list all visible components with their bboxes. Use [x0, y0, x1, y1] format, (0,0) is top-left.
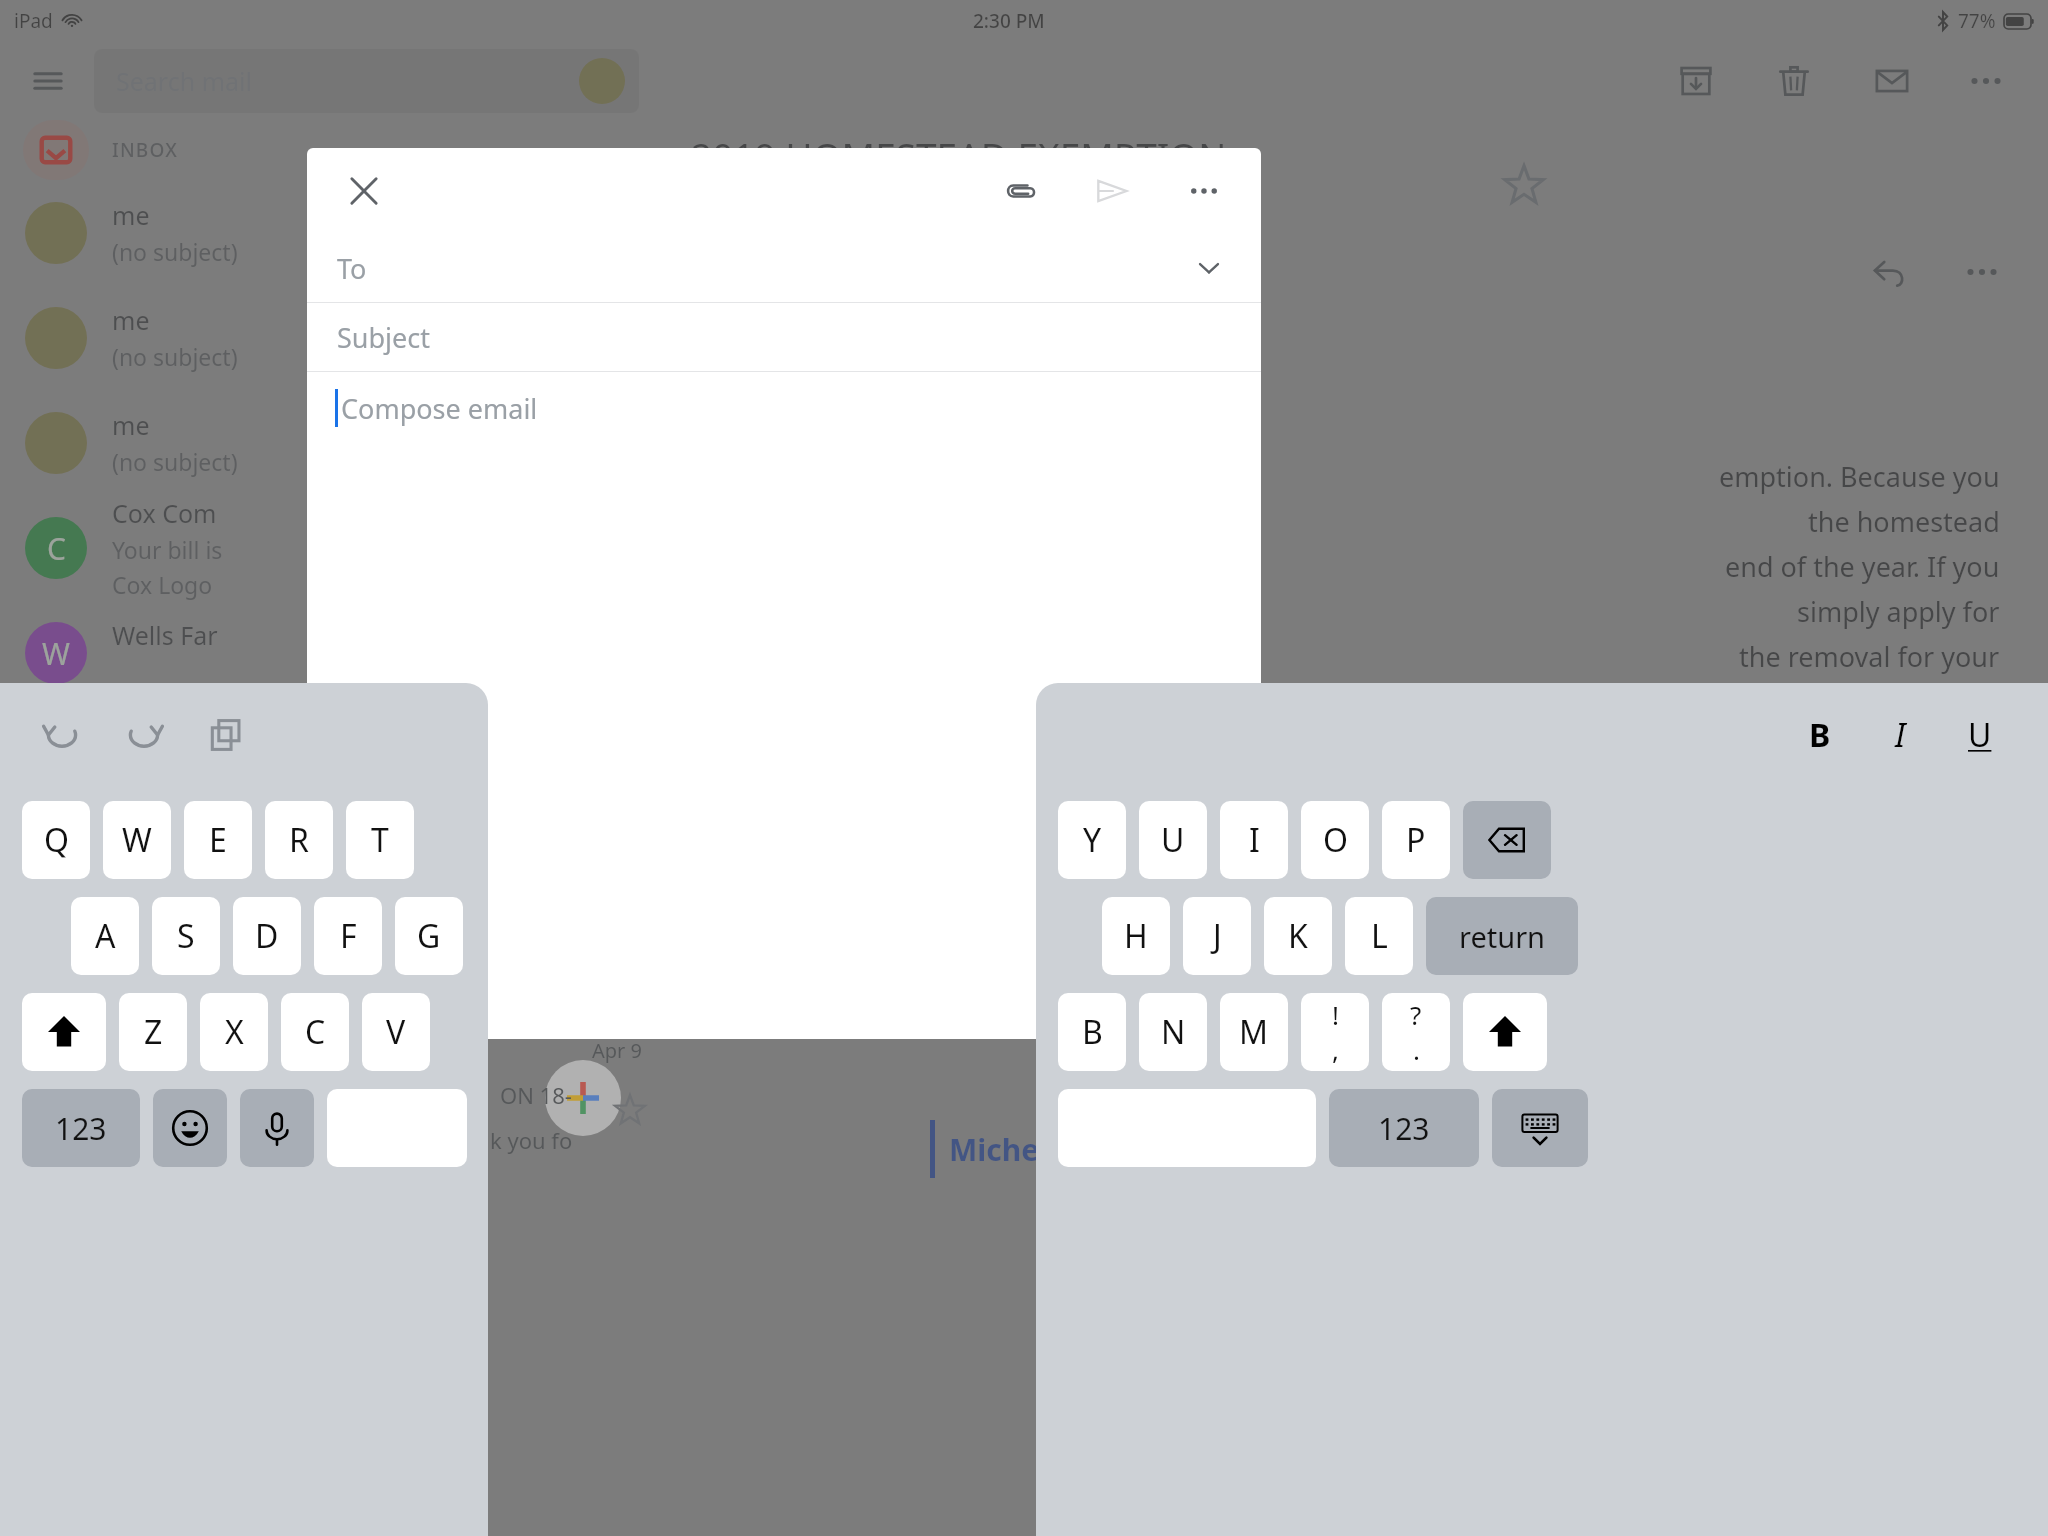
button[interactable]: Dictate [240, 1089, 314, 1167]
button[interactable]: Delete [1768, 55, 1820, 107]
button[interactable]: Reply [1864, 246, 1916, 298]
button[interactable]: U [1952, 707, 2008, 763]
staticText: INBOX [112, 137, 179, 163]
staticText: Miche [949, 1129, 1040, 1170]
button[interactable]: me [0, 285, 663, 390]
button[interactable]: Subject [307, 303, 1261, 371]
button[interactable]: ! [1301, 993, 1369, 1071]
button[interactable]: S [152, 897, 220, 975]
button[interactable]: Close [337, 164, 391, 218]
staticText: (no subject) [112, 341, 238, 372]
staticText: ! [1332, 997, 1339, 1032]
button[interactable]: L [1345, 897, 1413, 975]
button[interactable]: I [1872, 707, 1928, 763]
staticText: To [337, 250, 367, 287]
button[interactable]: B [1792, 707, 1848, 763]
staticText: emption. Because you [1719, 458, 2000, 495]
button[interactable]: Send [1085, 164, 1139, 218]
staticText: M [1239, 1010, 1269, 1054]
button[interactable]: V [362, 993, 430, 1071]
staticText: C [305, 1010, 326, 1054]
button[interactable]: Attach file [993, 164, 1047, 218]
button[interactable]: B [1058, 993, 1126, 1071]
button[interactable]: U [1139, 801, 1207, 879]
button[interactable]: T [346, 801, 414, 879]
button[interactable]: Compose email [307, 372, 1261, 444]
button[interactable]: C [281, 993, 349, 1071]
button[interactable]: G [395, 897, 463, 975]
staticText: B [1082, 1010, 1103, 1054]
button[interactable]: Space [1058, 1089, 1316, 1167]
button[interactable]: return [1426, 897, 1578, 975]
button[interactable]: Search mail [94, 49, 639, 113]
button[interactable]: F [314, 897, 382, 975]
staticText: G [417, 914, 441, 958]
button[interactable]: D [233, 897, 301, 975]
button[interactable]: Star [1502, 163, 1546, 207]
staticText: . [1413, 1032, 1420, 1067]
staticText: F [340, 914, 357, 958]
button[interactable]: I [1220, 801, 1288, 879]
button[interactable]: Undo [34, 707, 90, 763]
button[interactable]: K [1264, 897, 1332, 975]
button[interactable]: Y [1058, 801, 1126, 879]
staticText: O [1323, 818, 1348, 862]
button[interactable]: Archive [1670, 55, 1722, 107]
staticText: 2:30 PM [973, 8, 1045, 34]
button[interactable]: Compose [545, 1060, 621, 1136]
button[interactable]: A [71, 897, 139, 975]
staticText: I [1249, 818, 1260, 862]
button[interactable]: Redo [116, 707, 172, 763]
staticText: the homestead [1808, 503, 2000, 540]
button[interactable]: Hide keyboard [1492, 1089, 1588, 1167]
staticText: U [1968, 713, 1992, 757]
button[interactable]: To [307, 234, 1261, 302]
button[interactable]: ? [1382, 993, 1450, 1071]
button[interactable]: Shift [1463, 993, 1547, 1071]
button[interactable]: Menu [20, 53, 76, 109]
button[interactable]: 123 [22, 1089, 140, 1167]
button[interactable]: Emoji [153, 1089, 227, 1167]
button[interactable]: More options [1177, 164, 1231, 218]
staticText: K [1288, 914, 1308, 958]
button[interactable]: Space [327, 1089, 467, 1167]
button[interactable]: Backspace [1463, 801, 1551, 879]
button[interactable]: me [0, 180, 663, 285]
button[interactable]: 123 [1329, 1089, 1479, 1167]
button[interactable]: More [1956, 246, 2008, 298]
button[interactable]: H [1102, 897, 1170, 975]
staticText: Compose email [341, 390, 538, 427]
staticText: B [1809, 713, 1831, 757]
staticText: A [95, 914, 116, 958]
button[interactable]: N [1139, 993, 1207, 1071]
staticText: R [289, 818, 309, 862]
button[interactable]: Paste [198, 707, 254, 763]
staticText: H [1124, 914, 1148, 958]
staticText: V [386, 1010, 406, 1054]
button[interactable]: J [1183, 897, 1251, 975]
staticText: C [47, 528, 66, 569]
button[interactable]: Mark unread [1866, 55, 1918, 107]
button[interactable]: O [1301, 801, 1369, 879]
staticText: X [225, 1010, 244, 1054]
staticText: iPad [14, 8, 53, 34]
other: Expand recipients [1187, 246, 1231, 290]
button[interactable]: More options [1960, 55, 2012, 107]
button[interactable]: W [103, 801, 171, 879]
button[interactable]: Shift [22, 993, 106, 1071]
button[interactable]: E [184, 801, 252, 879]
staticText: S [177, 914, 195, 958]
staticText: Cox Com [112, 496, 217, 530]
button[interactable]: Q [22, 801, 90, 879]
button[interactable]: C [0, 495, 663, 600]
button[interactable]: R [265, 801, 333, 879]
button[interactable]: X [200, 993, 268, 1071]
staticText: the removal for your [1739, 638, 2000, 675]
button[interactable]: me [0, 390, 663, 495]
button[interactable]: W [0, 600, 663, 705]
button[interactable]: Z [119, 993, 187, 1071]
button[interactable]: P [1382, 801, 1450, 879]
staticText: 123 [1378, 1108, 1430, 1149]
button[interactable]: M [1220, 993, 1288, 1071]
